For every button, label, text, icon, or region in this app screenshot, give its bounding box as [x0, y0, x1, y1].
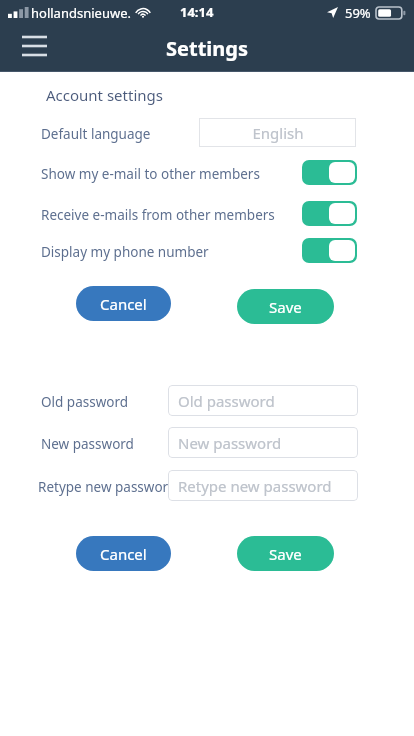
staticText: Account settings — [46, 85, 163, 105]
staticText: English — [252, 123, 304, 143]
button[interactable]: Show my e-mail to other members toggle, … — [302, 160, 357, 185]
staticText: Display my phone number — [41, 243, 209, 261]
button[interactable]: Receive e-mails from other members toggl… — [302, 201, 357, 226]
staticText: 14:14 — [180, 3, 214, 21]
button[interactable]: Display my phone number toggle, on — [302, 238, 357, 263]
staticText: New password — [41, 435, 134, 453]
button[interactable]: English — [199, 118, 356, 147]
staticText: Retype new password — [38, 478, 177, 496]
staticText: Settings — [166, 35, 248, 62]
staticText: 59% — [345, 4, 371, 22]
staticText: Show my e-mail to other members — [41, 165, 260, 183]
button[interactable]: Save — [237, 536, 334, 571]
staticText: Retype new password — [178, 476, 332, 496]
staticText: New password — [178, 433, 282, 453]
button[interactable]: Old password — [168, 385, 358, 416]
staticText: Old password — [41, 393, 129, 411]
staticText: Save — [269, 544, 302, 564]
button[interactable]: Open navigation menu — [10, 26, 58, 66]
staticText: hollandsnieuwe. — [31, 4, 131, 22]
staticText: Save — [269, 297, 302, 317]
button[interactable]: New password — [168, 427, 358, 458]
button[interactable]: Cancel — [76, 286, 171, 321]
staticText: Default language — [41, 125, 151, 143]
button[interactable]: Save — [237, 289, 334, 324]
button[interactable]: Cancel — [76, 536, 171, 571]
staticText: Receive e-mails from other members — [41, 206, 275, 224]
button[interactable]: Retype new password — [168, 470, 358, 501]
staticText: Cancel — [100, 294, 147, 314]
staticText: Cancel — [100, 544, 147, 564]
staticText: Old password — [178, 391, 275, 411]
